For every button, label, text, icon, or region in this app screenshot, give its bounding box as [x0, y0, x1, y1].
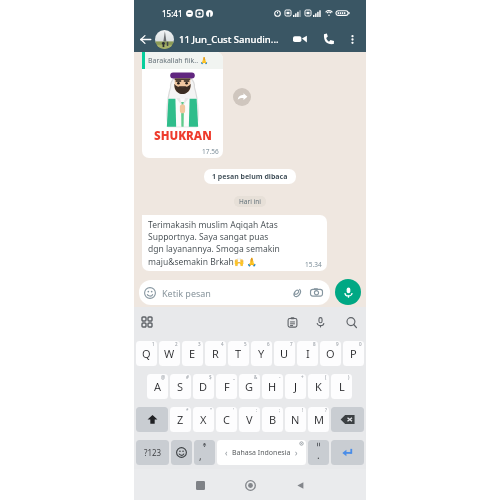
staticText: C	[223, 412, 230, 427]
staticText: Z	[177, 412, 184, 427]
button[interactable]: Recent apps	[187, 472, 213, 498]
button[interactable]: Home	[237, 472, 263, 498]
button[interactable]: S	[170, 374, 191, 399]
staticText: J	[294, 379, 298, 394]
staticText: G	[245, 379, 254, 394]
button[interactable]: R	[205, 341, 226, 366]
button[interactable]: E	[182, 341, 203, 366]
staticText: 15:41	[162, 8, 183, 19]
button[interactable]: V	[239, 407, 260, 432]
button[interactable]: Comma, voice typing	[194, 440, 215, 465]
staticText: ›	[295, 447, 298, 458]
button[interactable]: Shift	[136, 407, 168, 432]
button[interactable]: D	[193, 374, 214, 399]
other: Camera	[310, 286, 323, 299]
button[interactable]: J	[285, 374, 306, 399]
staticText: .	[317, 448, 320, 462]
button[interactable]: F	[216, 374, 237, 399]
staticText: ?123	[144, 447, 162, 458]
button[interactable]: L	[331, 374, 352, 399]
staticText: B	[269, 412, 277, 427]
button[interactable]: A	[147, 374, 168, 399]
staticText: P	[350, 346, 357, 361]
button[interactable]: Forward message	[233, 88, 251, 106]
staticText: SHUKRAN	[154, 128, 212, 144]
staticText: O	[326, 346, 335, 361]
button[interactable]: B	[262, 407, 283, 432]
button[interactable]: Q	[136, 341, 157, 366]
staticText: 1 pesan belum dibaca	[212, 172, 288, 182]
button[interactable]: G	[239, 374, 260, 399]
button[interactable]: More options	[344, 31, 361, 48]
button[interactable]: I	[297, 341, 318, 366]
staticText: R	[212, 346, 219, 361]
staticText: D	[199, 379, 208, 394]
button[interactable]: Call	[319, 29, 339, 49]
staticText: 5	[244, 341, 247, 347]
button[interactable]: H	[262, 374, 283, 399]
button[interactable]: Backspace	[331, 407, 364, 432]
staticText: Hari ini	[239, 197, 261, 206]
button[interactable]: ?123	[136, 440, 169, 465]
button[interactable]: Back	[287, 472, 313, 498]
staticText: 0	[359, 341, 362, 347]
staticText: *	[186, 407, 189, 413]
button[interactable]: Space, Bahasa Indonesia	[217, 440, 306, 465]
staticText: K	[315, 379, 322, 394]
staticText: Q	[142, 346, 151, 361]
staticText: 1	[152, 341, 155, 347]
button[interactable]: X	[193, 407, 214, 432]
button[interactable]: K	[308, 374, 329, 399]
staticText: $	[209, 374, 212, 380]
button[interactable]: U	[274, 341, 295, 366]
staticText: E	[189, 346, 196, 361]
button[interactable]: Clipboard	[283, 313, 301, 331]
button[interactable]: W	[159, 341, 180, 366]
button[interactable]: Search	[342, 313, 360, 331]
staticText: ‹	[225, 447, 228, 458]
staticText: Ketik pesan	[162, 287, 211, 299]
button[interactable]: Barakallah fiik.. 🙏	[142, 52, 223, 158]
button[interactable]: Enter	[331, 440, 364, 465]
staticText: :	[256, 407, 258, 413]
button[interactable]: C	[216, 407, 237, 432]
button[interactable]: Z	[170, 407, 191, 432]
staticText: 8	[313, 341, 316, 347]
button[interactable]: Back	[137, 31, 154, 48]
button[interactable]: Video call	[289, 28, 311, 50]
staticText: V	[246, 412, 253, 427]
button[interactable]: Terimakasih muslim Aqiqah Atas Supportny…	[142, 215, 327, 271]
button[interactable]: Y	[251, 341, 272, 366]
staticText: #	[186, 374, 189, 380]
button[interactable]: Emoji	[171, 440, 192, 465]
button[interactable]: T	[228, 341, 249, 366]
staticText: !	[302, 407, 304, 413]
button[interactable]: Ketik pesan	[139, 280, 330, 305]
button[interactable]: M	[308, 407, 329, 432]
button[interactable]: P	[343, 341, 364, 366]
staticText: T	[235, 346, 242, 361]
staticText: Bahasa Indonesia	[232, 448, 291, 458]
staticText: 3	[198, 341, 201, 347]
staticText: &	[254, 374, 258, 380]
staticText: 2	[175, 341, 178, 347]
staticText: @	[161, 374, 166, 380]
button[interactable]: N	[285, 407, 306, 432]
button[interactable]: Period, more symbols	[308, 440, 329, 465]
button[interactable]: Voice input	[311, 313, 329, 331]
staticText: W	[164, 346, 175, 361]
button[interactable]: O	[320, 341, 341, 366]
staticText: Y	[258, 346, 265, 361]
staticText: (	[325, 374, 327, 380]
staticText: 9	[336, 341, 339, 347]
button[interactable]: Record voice message	[335, 279, 361, 305]
staticText: U	[280, 346, 289, 361]
staticText: ;	[279, 407, 281, 413]
staticText: 11 Jun_Cust Sanudin...	[179, 33, 279, 46]
staticText: 4	[221, 341, 224, 347]
button[interactable]: Sticker packs	[138, 313, 156, 331]
staticText: ,	[199, 449, 202, 463]
staticText: _	[233, 374, 235, 380]
other: Attach	[290, 286, 303, 299]
staticText: Barakallah fiik.. 🙏	[148, 56, 209, 66]
